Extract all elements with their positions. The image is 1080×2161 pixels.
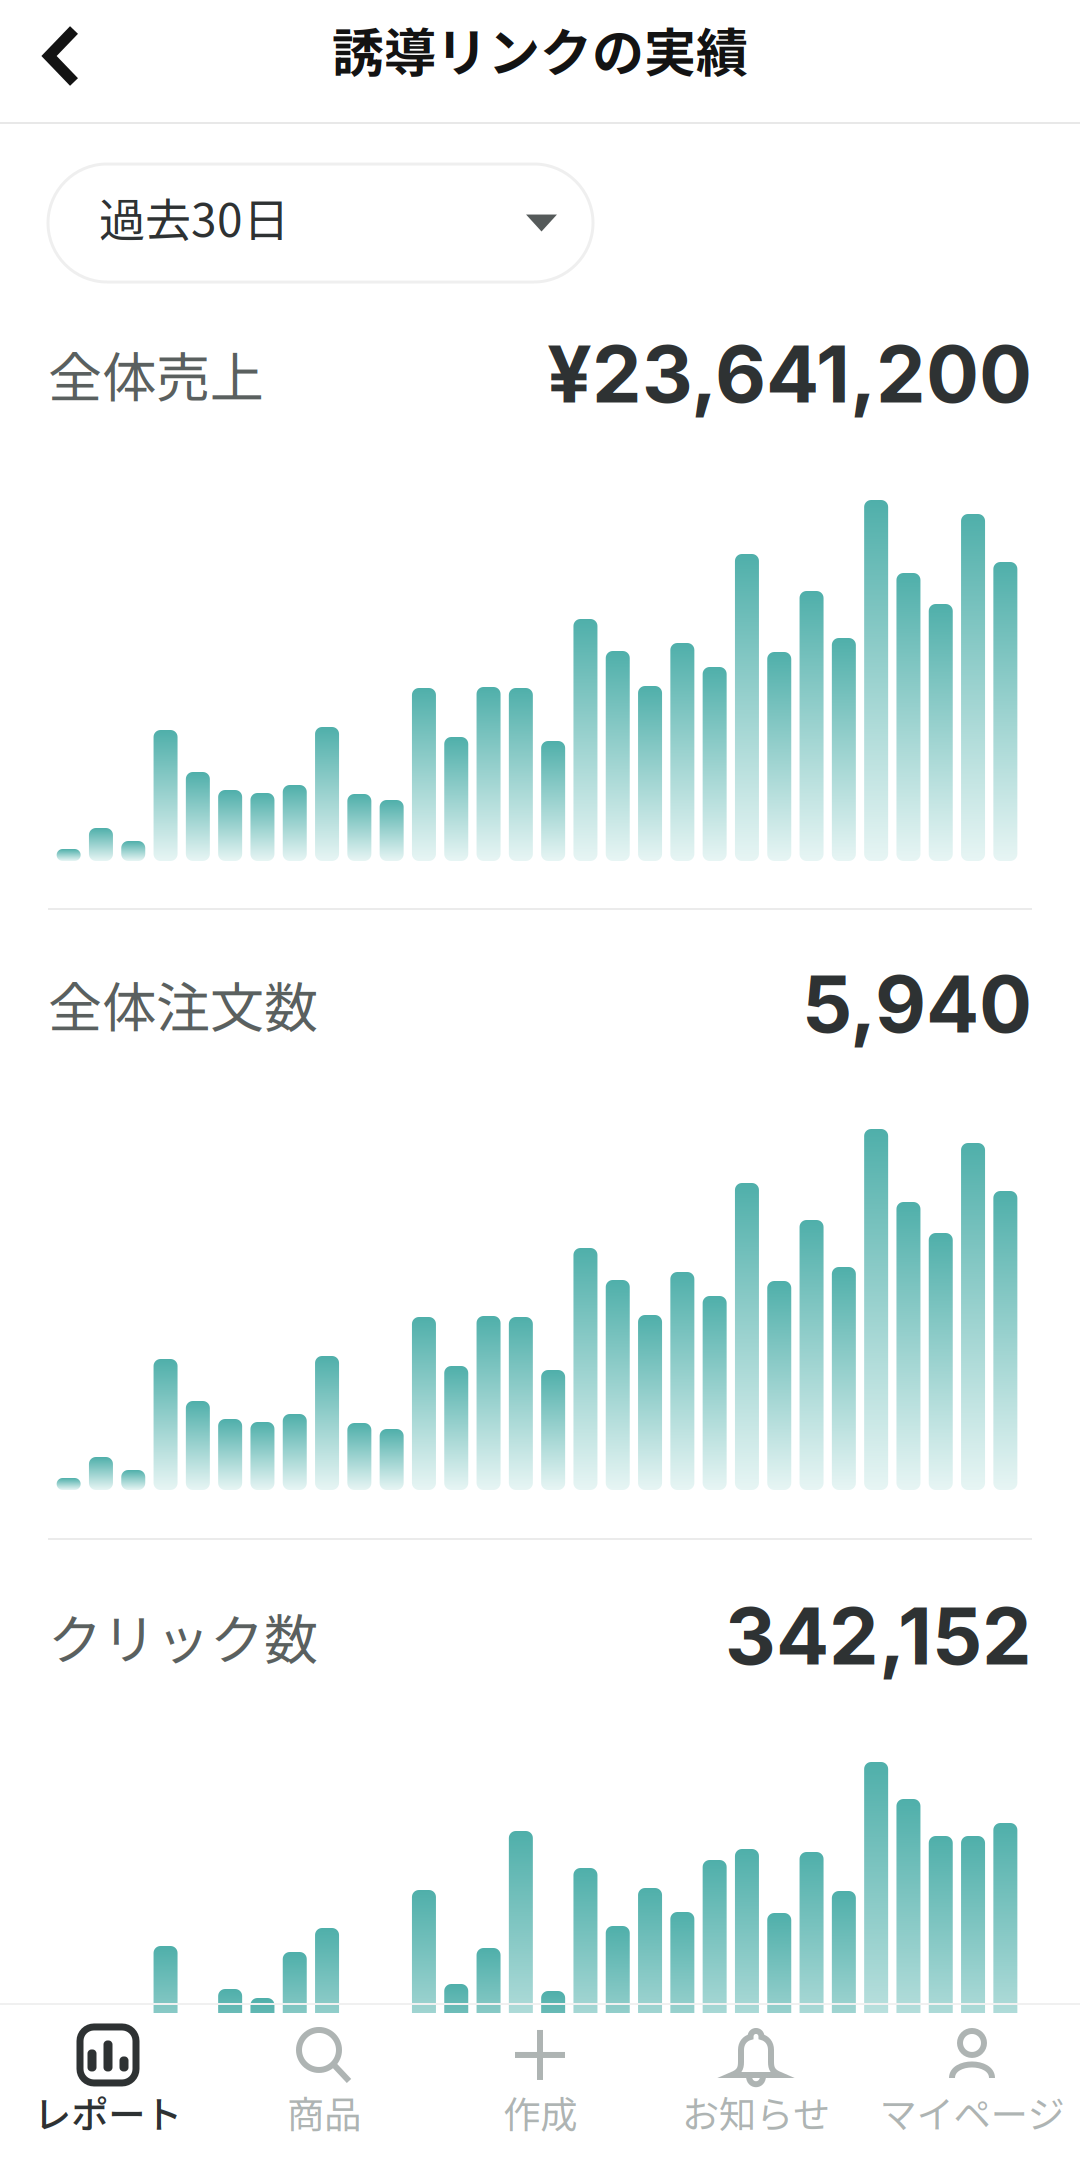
button[interactable]: マイページ <box>864 2011 1080 2155</box>
button[interactable]: 過去30日 <box>48 164 593 282</box>
button[interactable]: Back <box>0 0 104 122</box>
staticText: クリック数 <box>48 1597 318 1675</box>
button[interactable]: 商品 <box>216 2011 432 2155</box>
button[interactable]: お知らせ <box>648 2011 864 2155</box>
button[interactable]: レポート <box>0 2011 216 2155</box>
staticText: 誘導リンクの実績 <box>332 11 748 87</box>
staticText: 過去30日 <box>99 184 289 250</box>
staticText: レポート <box>34 2085 182 2139</box>
staticText: ¥23,641,200 <box>547 326 1032 422</box>
staticText: 作成 <box>503 2085 577 2139</box>
button[interactable]: 作成 <box>432 2011 648 2155</box>
staticText: 商品 <box>287 2085 361 2139</box>
staticText: 342,152 <box>725 1588 1032 1684</box>
staticText: 全体注文数 <box>48 965 318 1043</box>
staticText: マイページ <box>879 2085 1064 2139</box>
staticText: お知らせ <box>682 2085 830 2139</box>
staticText: 5,940 <box>802 956 1032 1052</box>
staticText: 全体売上 <box>48 335 264 413</box>
